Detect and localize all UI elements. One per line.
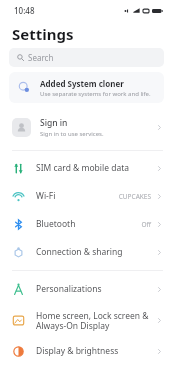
staticText: Sign in (40, 117, 68, 129)
button[interactable]: SIM card & mobile data (0, 154, 173, 182)
staticText: 10:48 (14, 5, 35, 16)
button[interactable]: Sign in (0, 109, 173, 145)
button[interactable]: Bluetooth (0, 210, 173, 238)
button[interactable]: Wi-Fi (0, 182, 173, 210)
button[interactable]: Home screen, Lock screen & Always-On Dis… (0, 303, 173, 337)
staticText: Home screen, Lock screen & Always-On Dis… (36, 310, 156, 331)
button[interactable]: Search (9, 48, 164, 67)
staticText: Personalizations (36, 283, 156, 295)
button[interactable]: Display & brightness (0, 337, 173, 365)
staticText: Settings (12, 24, 74, 44)
staticText: Connection & sharing (36, 246, 156, 258)
staticText: Wi-Fi (36, 190, 118, 202)
staticText: Search (28, 52, 54, 63)
staticText: Sign in to use services. (40, 130, 104, 138)
staticText: Display & brightness (36, 345, 156, 357)
staticText: CUPCAKES (118, 192, 151, 201)
staticText: Use separate systems for work and life. (40, 90, 151, 98)
staticText: Bluetooth (36, 218, 141, 230)
button[interactable]: Connection & sharing (0, 238, 173, 266)
button[interactable]: Added System cloner (9, 72, 164, 103)
staticText: SIM card & mobile data (36, 162, 156, 174)
staticText: Added System cloner (40, 78, 124, 89)
button[interactable]: Personalizations (0, 275, 173, 303)
staticText: Off (141, 220, 151, 229)
